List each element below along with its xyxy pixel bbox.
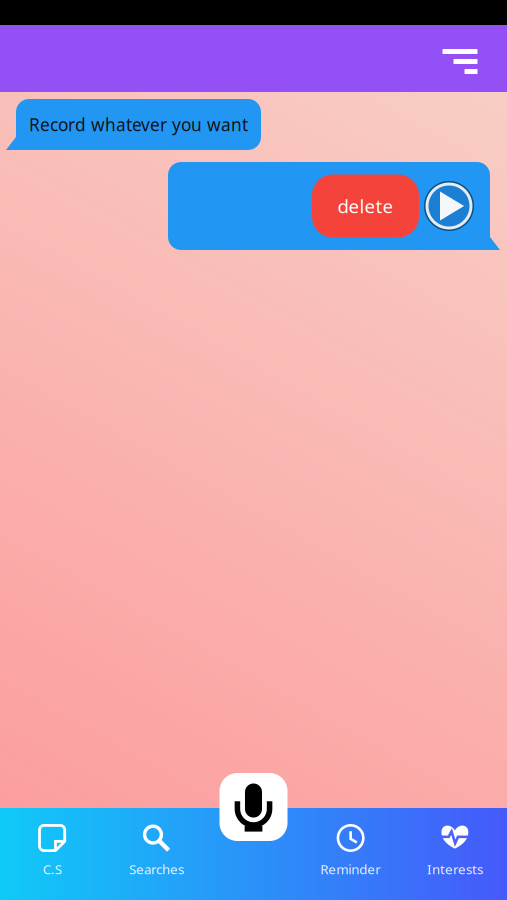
staticText: Searches: [129, 860, 184, 878]
button[interactable]: Play recording: [424, 181, 474, 231]
staticText: C.S: [43, 860, 62, 878]
button[interactable]: Record: [219, 773, 287, 841]
button[interactable]: Interests: [403, 808, 507, 900]
button[interactable]: Searches: [104, 808, 208, 900]
button[interactable]: Menu: [438, 36, 482, 80]
staticText: delete: [337, 194, 393, 218]
button[interactable]: delete: [312, 174, 419, 237]
staticText: Reminder: [320, 860, 381, 878]
staticText: Interests: [427, 860, 483, 878]
staticText: Record whatever you want: [29, 113, 248, 136]
button[interactable]: C.S: [0, 808, 104, 900]
button[interactable]: Reminder: [298, 808, 403, 900]
